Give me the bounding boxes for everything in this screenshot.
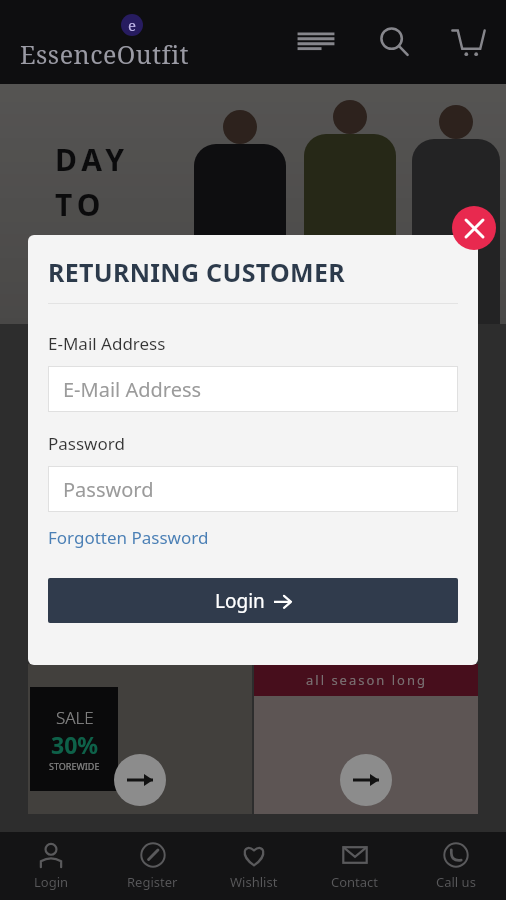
staticText: Register (127, 873, 178, 891)
staticText: NIGHT (55, 229, 179, 270)
button[interactable]: Menu (292, 18, 340, 66)
staticText: Password (63, 476, 154, 503)
button[interactable]: Search (370, 18, 418, 66)
staticText: Forgotten Password (48, 526, 209, 549)
staticText: Login (215, 588, 265, 614)
staticText: E-Mail Address (63, 376, 202, 403)
button[interactable]: Cart (444, 18, 492, 66)
button[interactable]: Login (48, 578, 458, 623)
button[interactable]: Call us (405, 832, 506, 900)
button[interactable]: E-Mail Address (48, 366, 458, 412)
staticText: Wishlist (230, 873, 278, 891)
button[interactable]: Contact (304, 832, 405, 900)
staticText: Login (34, 873, 69, 891)
staticText: Contact (331, 873, 379, 891)
staticText: 30% (51, 729, 99, 760)
button[interactable]: Open (340, 754, 392, 806)
button[interactable]: Close (452, 206, 496, 250)
staticText: Password (48, 432, 125, 455)
button[interactable]: Register (102, 832, 203, 900)
staticText: SALE (56, 706, 94, 729)
staticText: EssenceOutfit (20, 37, 190, 71)
staticText: DAY (55, 139, 130, 180)
staticText: STOREWIDE (49, 760, 100, 772)
button[interactable]: Open (114, 754, 166, 806)
staticText: all season long (306, 671, 427, 689)
button[interactable]: Login (0, 832, 102, 900)
button[interactable]: Password (48, 466, 458, 512)
staticText: E-Mail Address (48, 332, 166, 355)
staticText: RETURNING CUSTOMER (48, 255, 345, 289)
staticText: e (128, 15, 137, 35)
button[interactable]: Wishlist (203, 832, 304, 900)
staticText: Call us (436, 873, 476, 891)
staticText: TO (55, 184, 106, 225)
button[interactable]: Forgotten Password (48, 526, 209, 549)
